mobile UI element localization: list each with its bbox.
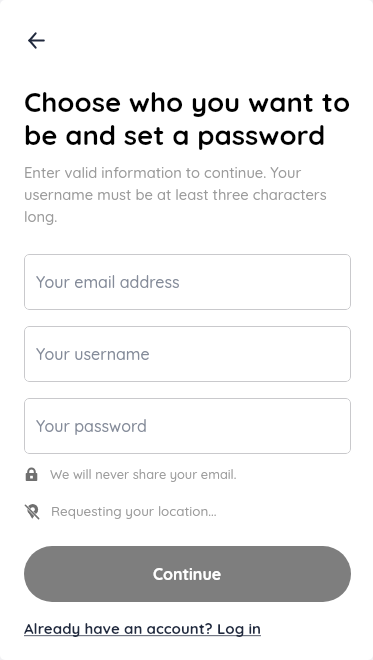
button[interactable]: Back bbox=[18, 22, 54, 58]
staticText: Your password bbox=[36, 416, 147, 436]
button[interactable]: Your password bbox=[24, 398, 351, 454]
staticText: Already have an account? Log in bbox=[24, 619, 261, 638]
staticText: Choose who you want to be and set a pass… bbox=[24, 84, 355, 152]
button[interactable]: Your username bbox=[24, 326, 351, 382]
button[interactable]: Your email address bbox=[24, 254, 351, 310]
staticText: Your email address bbox=[36, 272, 180, 292]
staticText: Continue bbox=[153, 564, 222, 584]
staticText: Your username bbox=[36, 344, 150, 364]
button[interactable]: Continue bbox=[24, 546, 351, 602]
button[interactable]: Already have an account? Log in bbox=[24, 619, 261, 638]
staticText: We will never share your email. bbox=[50, 466, 237, 482]
staticText: Requesting your location... bbox=[51, 503, 217, 520]
staticText: Enter valid information to continue. You… bbox=[24, 163, 349, 225]
